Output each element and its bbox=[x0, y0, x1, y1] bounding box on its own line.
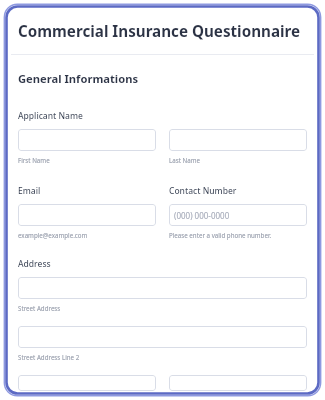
button[interactable]: (000) 000-0000 bbox=[169, 204, 307, 226]
button[interactable] bbox=[18, 326, 307, 348]
button[interactable] bbox=[18, 129, 156, 151]
button[interactable] bbox=[18, 277, 307, 299]
button[interactable] bbox=[169, 375, 307, 391]
button[interactable] bbox=[18, 375, 156, 391]
staticText: Street Address Line 2 bbox=[18, 353, 80, 361]
staticText: Contact Number bbox=[169, 185, 237, 197]
staticText: Email bbox=[18, 185, 41, 197]
staticText: First Name bbox=[18, 156, 50, 164]
staticText: General Informations bbox=[18, 71, 139, 86]
staticText: Address bbox=[18, 258, 51, 270]
button[interactable] bbox=[169, 129, 307, 151]
staticText: Last Name bbox=[169, 156, 200, 164]
staticText: (000) 000-0000 bbox=[174, 210, 230, 221]
staticText: Please enter a valid phone number. bbox=[169, 231, 272, 239]
staticText: Commercial Insurance Questionnaire bbox=[18, 21, 301, 42]
staticText: Applicant Name bbox=[18, 110, 83, 122]
staticText: Street Address bbox=[18, 304, 61, 312]
staticText: example@example.com bbox=[18, 231, 88, 239]
button[interactable] bbox=[18, 204, 156, 226]
